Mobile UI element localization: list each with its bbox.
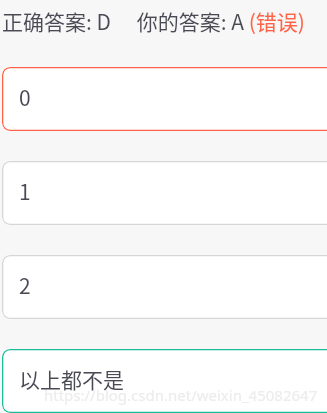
staticText: 0 (19, 82, 31, 112)
staticText: https://blog.csdn.net/weixin_45082647 (44, 385, 318, 405)
button[interactable]: 0 (2, 67, 327, 131)
staticText: 2 (19, 270, 31, 300)
button[interactable]: 1 (2, 161, 327, 225)
staticText: 以上都不是 (19, 364, 124, 394)
button[interactable]: 以上都不是 (2, 349, 327, 413)
button[interactable]: 2 (2, 255, 327, 319)
staticText: 正确答案: D 你的答案: A (错误) (2, 6, 305, 36)
staticText: 1 (19, 176, 31, 206)
